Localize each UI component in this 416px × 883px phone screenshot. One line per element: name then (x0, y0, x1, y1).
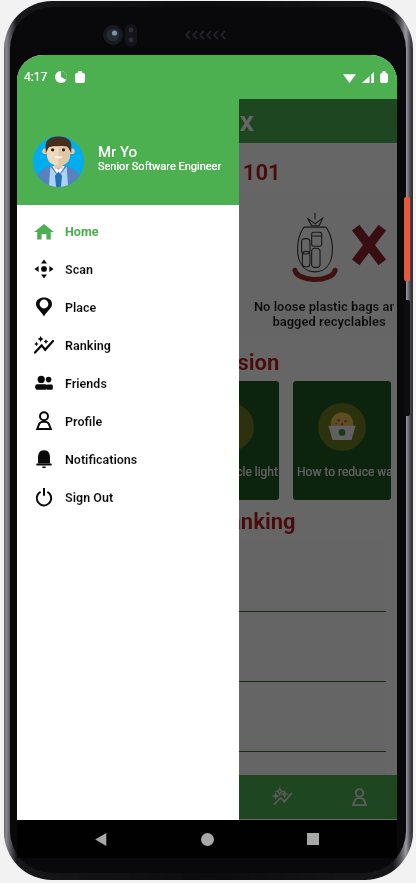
button[interactable]: Ranking (17, 326, 239, 364)
staticText: Recycling 101 (141, 160, 281, 186)
button[interactable]: Profile (321, 775, 397, 819)
button[interactable]: Friends (17, 364, 239, 402)
button[interactable]: How to recycle light bulbs (181, 381, 279, 500)
button[interactable]: Place (169, 775, 245, 819)
button[interactable] (29, 542, 386, 611)
staticText: Home (65, 224, 99, 239)
button[interactable] (29, 612, 386, 681)
staticText: How to recycle light bulbs (181, 465, 279, 479)
button[interactable] (29, 752, 386, 775)
button[interactable]: Notifications (17, 440, 239, 478)
button[interactable]: How to reduce waste (293, 381, 391, 500)
button[interactable]: No loose plastic bags and bagged recycla… (23, 192, 394, 335)
staticText: Scan (65, 262, 93, 277)
staticText: How to reduce waste (297, 465, 391, 479)
staticText: Mission (201, 350, 280, 376)
staticText: Profile (65, 414, 103, 429)
staticText: EcoMax (154, 105, 254, 138)
button[interactable]: Home (17, 212, 239, 250)
button[interactable] (29, 682, 386, 751)
staticText: Ranking (65, 338, 111, 353)
staticText: Mr Yo (98, 143, 137, 161)
staticText: Notifications (65, 452, 138, 467)
button[interactable]: Place (17, 288, 239, 326)
staticText: Ranking (215, 509, 296, 535)
button[interactable]: Ranking (245, 775, 321, 819)
staticText: Senior Software Engineer (98, 160, 222, 173)
button[interactable]: Profile (17, 402, 239, 440)
button[interactable]: Recent apps (291, 820, 335, 858)
button[interactable]: Sign Out (17, 478, 239, 516)
button[interactable] (17, 99, 397, 820)
staticText: No loose plastic bags and bagged recycla… (217, 299, 394, 329)
staticText: 4:17 (24, 70, 48, 84)
button[interactable]: How to recycle light bulbs (70, 381, 168, 500)
button[interactable]: Scan (17, 250, 239, 288)
staticText: Friends (65, 376, 107, 391)
button[interactable]: Open navigation drawer (25, 105, 57, 137)
button[interactable]: Home (185, 820, 229, 858)
staticText: Place (65, 300, 97, 315)
staticText: Sign Out (65, 490, 114, 505)
button[interactable]: Back (79, 820, 123, 858)
